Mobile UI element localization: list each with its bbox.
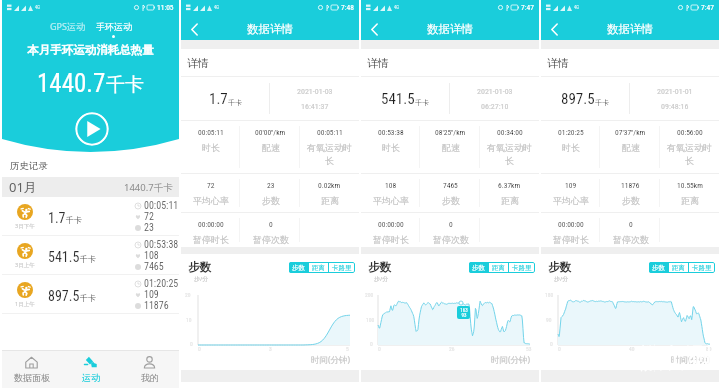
- button[interactable]: 卡路里: [329, 262, 355, 273]
- staticText: 距离: [672, 264, 685, 272]
- button[interactable]: 步数: [289, 262, 308, 273]
- staticText: 有氧运动时长: [665, 142, 714, 166]
- staticText: 4G: [214, 5, 219, 10]
- staticText: 00:56:00: [677, 128, 703, 137]
- staticText: 10: [186, 317, 192, 323]
- button[interactable]: Back: [183, 18, 205, 40]
- staticText: 200: [365, 292, 374, 298]
- staticText: 本月手环运动消耗总热量: [2, 43, 179, 57]
- staticText: 历史记录: [10, 160, 48, 172]
- button[interactable]: 距离: [489, 262, 508, 273]
- staticText: 108: [144, 250, 159, 261]
- button[interactable]: 手环运动: [93, 19, 135, 34]
- staticText: 90: [546, 317, 552, 323]
- staticText: 100: [366, 317, 375, 323]
- staticText: 7465: [443, 181, 458, 190]
- button[interactable]: 步数: [649, 262, 668, 273]
- staticText: 0: [449, 220, 453, 229]
- staticText: 20: [185, 292, 191, 298]
- staticText: 平均心率: [553, 195, 589, 206]
- staticText: 01:20:25: [144, 278, 179, 289]
- staticText: 暂停次数: [613, 234, 649, 245]
- staticText: 0: [370, 341, 373, 347]
- staticText: 541.5: [48, 249, 80, 265]
- staticText: 距离: [681, 195, 699, 206]
- staticText: 数据详情: [607, 22, 653, 36]
- staticText: 时长: [202, 142, 220, 153]
- staticText: 09:48:16: [661, 102, 689, 111]
- staticText: 00:05:11: [198, 128, 224, 137]
- staticText: 5: [346, 346, 349, 352]
- staticText: 距离: [312, 264, 325, 272]
- staticText: 千卡: [80, 293, 96, 303]
- button[interactable]: Start workout: [75, 112, 109, 146]
- staticText: 0: [629, 220, 633, 229]
- staticText: 暂停次数: [433, 234, 469, 245]
- staticText: 时间(分钟): [671, 354, 711, 366]
- staticText: 109: [565, 181, 577, 190]
- button[interactable]: 数据面板: [2, 351, 61, 388]
- staticText: 00:00:00: [198, 220, 224, 229]
- button[interactable]: 卡路里: [509, 262, 535, 273]
- button[interactable]: Back: [543, 18, 565, 40]
- staticText: 暂停次数: [253, 234, 289, 245]
- staticText: 2021-01-03: [477, 87, 513, 96]
- staticText: 步数: [188, 260, 211, 274]
- button[interactable]: 距离: [669, 262, 688, 273]
- staticText: 千卡: [228, 98, 242, 107]
- staticText: 时间(分钟): [311, 354, 351, 366]
- button[interactable]: 我的: [120, 351, 179, 388]
- staticText: 1日上午: [15, 300, 35, 308]
- staticText: 00:05:11: [144, 200, 179, 211]
- staticText: 距离: [501, 195, 519, 206]
- staticText: 40: [629, 346, 635, 352]
- staticText: 暂停时长: [553, 234, 589, 245]
- staticText: 2021-01-03: [297, 87, 333, 96]
- staticText: 4G: [394, 5, 399, 10]
- staticText: 109: [144, 289, 159, 300]
- button[interactable]: 距离: [309, 262, 328, 273]
- staticText: 897.5: [48, 288, 80, 304]
- staticText: 数据详情: [427, 22, 473, 36]
- button[interactable]: 卡路里: [689, 262, 715, 273]
- staticText: 我的: [141, 372, 159, 383]
- staticText: 08'25''/km: [435, 128, 466, 137]
- staticText: 01月: [9, 178, 37, 196]
- button[interactable]: 3日下午: [2, 197, 179, 236]
- button[interactable]: GPS运动: [47, 18, 88, 34]
- button[interactable]: 步数: [469, 262, 488, 273]
- staticText: 72: [144, 211, 154, 222]
- button[interactable]: 1日上午: [2, 275, 179, 314]
- staticText: 53: [526, 346, 532, 352]
- staticText: 3日下午: [15, 222, 35, 230]
- staticText: 千卡: [66, 215, 82, 225]
- staticText: 步数: [548, 260, 571, 274]
- staticText: 步数: [652, 264, 665, 272]
- staticText: 千卡: [415, 98, 429, 107]
- staticText: 1440.7: [37, 69, 106, 98]
- staticText: 平均心率: [373, 195, 409, 206]
- staticText: 0.02km: [318, 181, 341, 190]
- staticText: 11876: [144, 300, 169, 311]
- button[interactable]: 3日上午: [2, 236, 179, 275]
- button[interactable]: 运动: [61, 351, 120, 388]
- staticText: 10.55km: [677, 181, 703, 190]
- staticText: 0: [269, 220, 273, 229]
- staticText: 6.37km: [498, 181, 521, 190]
- staticText: 16:41:37: [301, 102, 329, 111]
- staticText: 数据面板: [14, 372, 50, 383]
- staticText: 26: [449, 346, 455, 352]
- staticText: 0: [378, 346, 381, 352]
- staticText: 00:05:11: [317, 128, 343, 137]
- staticText: 00:00:00: [378, 220, 404, 229]
- staticText: 07'37''/km: [615, 128, 646, 137]
- staticText: 11:05: [157, 3, 174, 12]
- staticText: 00'00''/km: [255, 128, 286, 137]
- staticText: 80: [706, 346, 712, 352]
- staticText: 步/分: [554, 275, 569, 283]
- staticText: 步数: [262, 195, 280, 206]
- staticText: 00:34:00: [497, 128, 523, 137]
- staticText: 4G: [35, 5, 40, 10]
- button[interactable]: Back: [363, 18, 385, 40]
- staticText: 0: [558, 346, 561, 352]
